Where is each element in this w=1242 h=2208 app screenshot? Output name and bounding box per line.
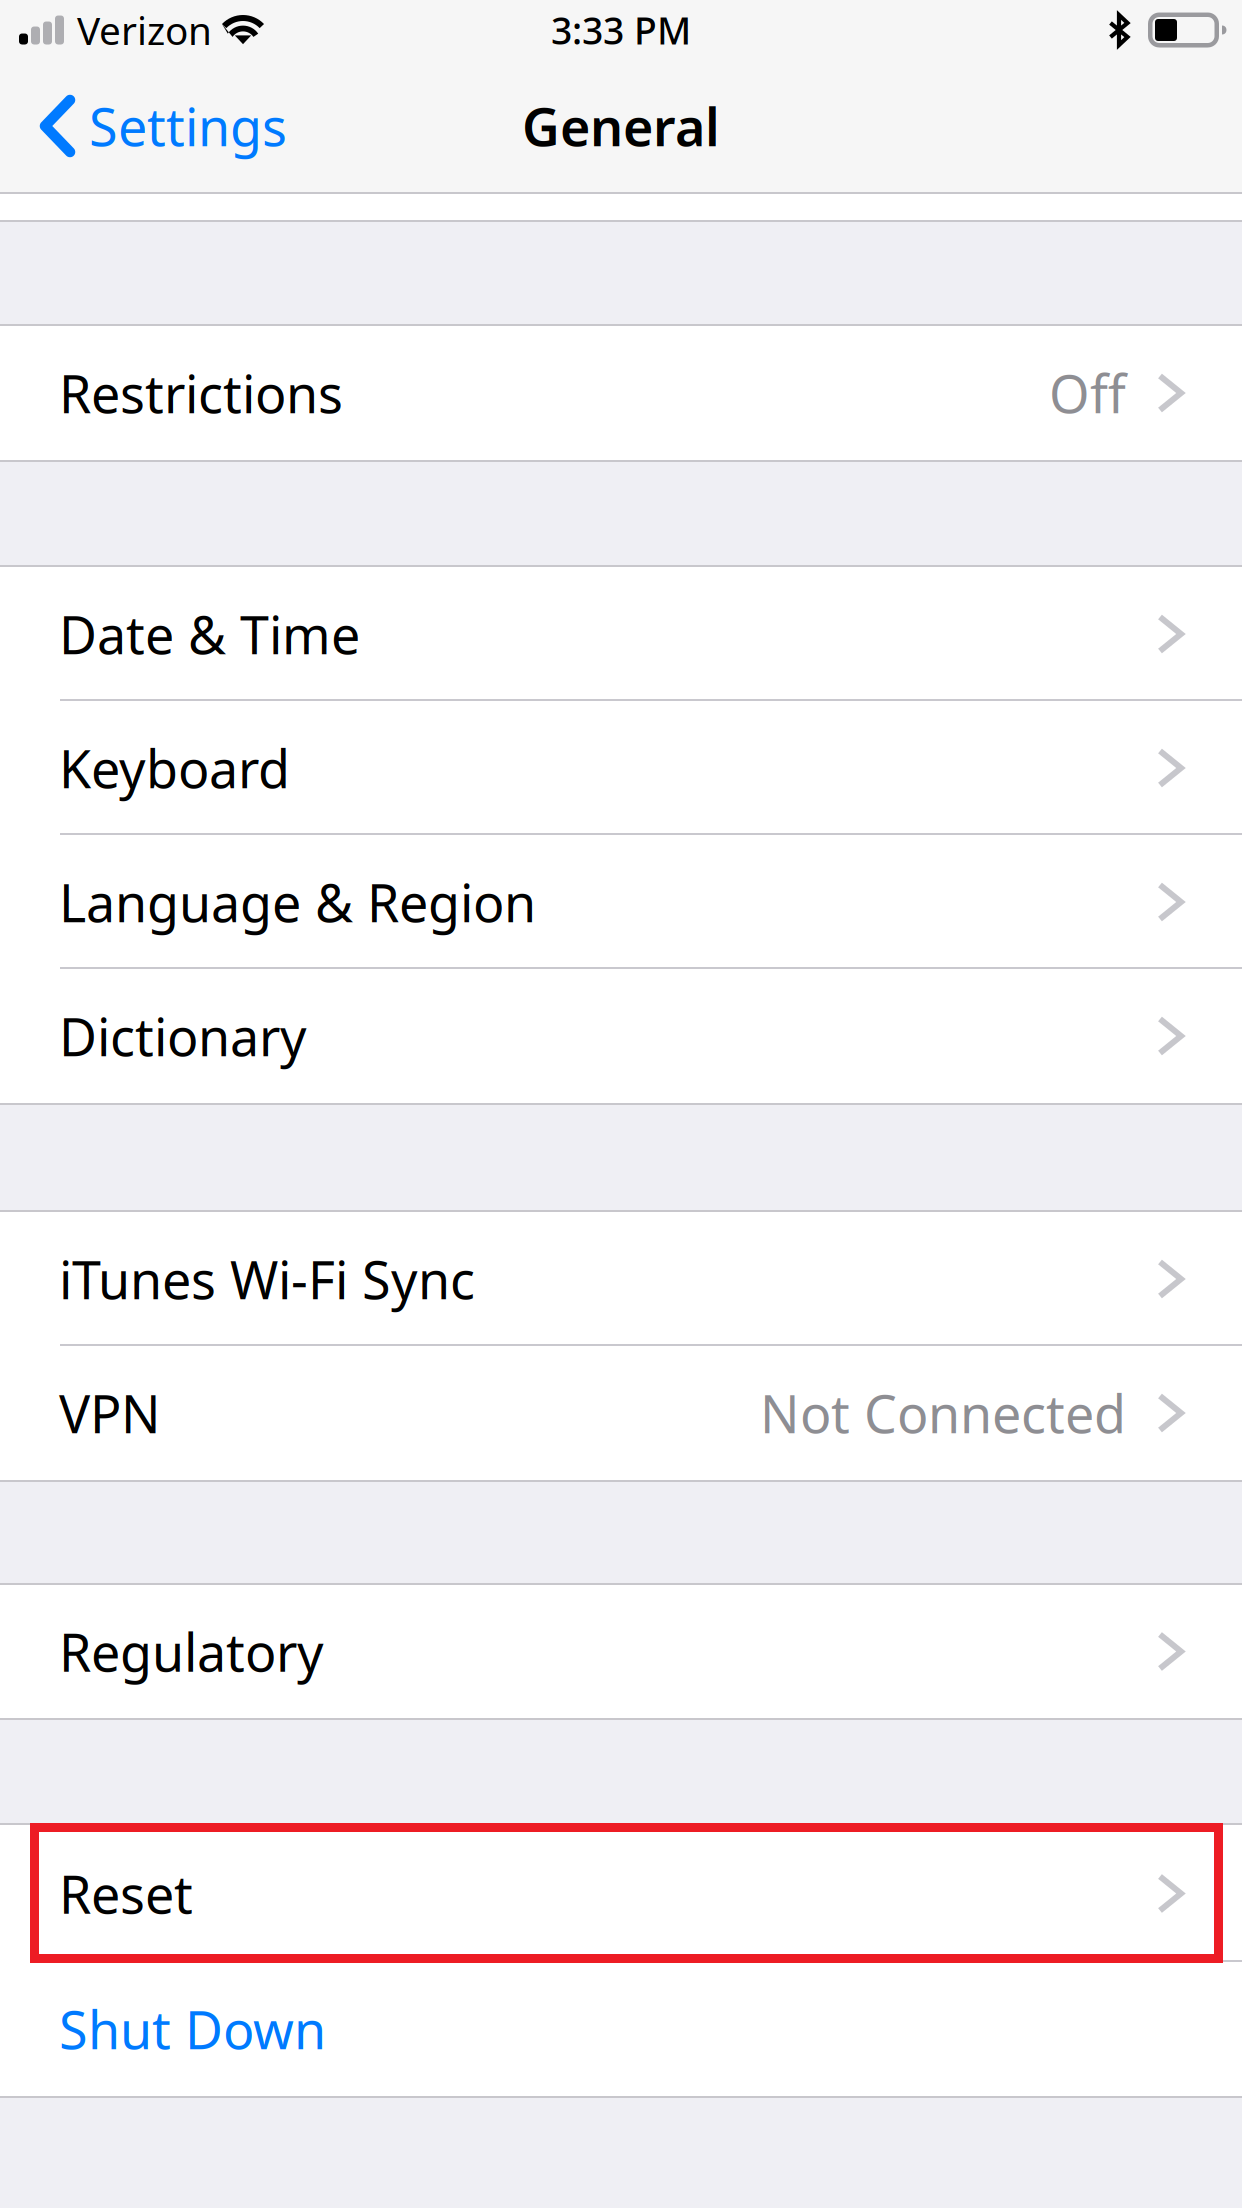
- button[interactable]: Reset: [0, 1825, 1242, 1962]
- button[interactable]: Shut Down: [0, 1962, 1242, 2096]
- button[interactable]: Restrictions: [0, 326, 1242, 460]
- staticText: Reset: [59, 1859, 193, 1928]
- staticText: iTunes Wi-Fi Sync: [59, 1244, 475, 1314]
- button[interactable]: Date & Time: [0, 567, 1242, 701]
- staticText: Date & Time: [59, 599, 360, 669]
- button[interactable]: Language & Region: [0, 835, 1242, 969]
- button[interactable]: iTunes Wi-Fi Sync: [0, 1212, 1242, 1346]
- staticText: VPN: [59, 1378, 161, 1448]
- button[interactable]: Keyboard: [0, 701, 1242, 835]
- button[interactable]: VPN: [0, 1346, 1242, 1480]
- staticText: Settings: [89, 91, 287, 161]
- staticText: Regulatory: [59, 1617, 324, 1686]
- staticText: General: [522, 91, 720, 161]
- button[interactable]: Back to Settings: [0, 60, 311, 192]
- staticText: Language & Region: [59, 867, 536, 937]
- button[interactable]: Dictionary: [0, 969, 1242, 1103]
- staticText: Off: [1049, 358, 1126, 428]
- button[interactable]: Regulatory: [0, 1585, 1242, 1718]
- staticText: Restrictions: [59, 358, 343, 428]
- staticText: Shut Down: [59, 1994, 326, 2064]
- staticText: Not Connected: [760, 1378, 1126, 1448]
- staticText: 3:33 PM: [551, 5, 691, 55]
- staticText: Dictionary: [59, 1001, 307, 1071]
- staticText: Verizon: [77, 4, 212, 56]
- staticText: Keyboard: [59, 733, 290, 803]
